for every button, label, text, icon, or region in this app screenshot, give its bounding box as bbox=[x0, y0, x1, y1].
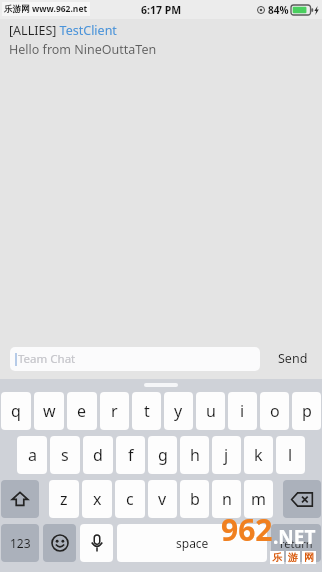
button[interactable]: w bbox=[34, 392, 64, 430]
staticText: x bbox=[93, 488, 102, 510]
staticText: c bbox=[126, 488, 134, 510]
staticText: 123 bbox=[10, 535, 31, 551]
button[interactable]: r bbox=[100, 392, 129, 430]
staticText: f bbox=[128, 444, 134, 466]
staticText: 乐 bbox=[272, 551, 282, 564]
staticText: m bbox=[251, 488, 266, 510]
staticText: o bbox=[270, 400, 280, 422]
staticText: Send bbox=[278, 350, 308, 367]
staticText: 962 bbox=[221, 509, 273, 550]
staticText: 游 bbox=[288, 551, 298, 564]
button[interactable]: k bbox=[244, 436, 273, 474]
staticText: z bbox=[60, 488, 68, 510]
staticText: Hello from NineOuttaTen bbox=[9, 41, 157, 58]
button[interactable]: g bbox=[148, 436, 177, 474]
button[interactable]: n bbox=[212, 480, 241, 518]
staticText: Team Chat bbox=[18, 351, 76, 367]
button[interactable]: a bbox=[17, 436, 47, 474]
button[interactable]: l bbox=[276, 436, 305, 474]
staticText: s bbox=[61, 444, 69, 466]
button[interactable]: u bbox=[196, 392, 225, 430]
staticText: 84% bbox=[268, 3, 289, 17]
staticText: e bbox=[77, 400, 87, 422]
button[interactable]: m bbox=[244, 480, 273, 518]
button[interactable]: e bbox=[67, 392, 97, 430]
staticText: .NET bbox=[273, 524, 316, 550]
button[interactable]: p bbox=[292, 392, 321, 430]
button[interactable]: v bbox=[148, 480, 177, 518]
staticText: space bbox=[176, 535, 209, 551]
staticText: n bbox=[222, 488, 232, 510]
staticText: d bbox=[93, 444, 103, 466]
staticText: j bbox=[224, 444, 229, 466]
button[interactable]: d bbox=[83, 436, 113, 474]
button[interactable]: o bbox=[260, 392, 289, 430]
staticText: www.962.net bbox=[32, 3, 88, 15]
staticText: u bbox=[206, 400, 216, 422]
button[interactable]: z bbox=[49, 480, 79, 518]
button[interactable]: t bbox=[132, 392, 161, 430]
staticText: [ALLIES] TestClient bbox=[9, 22, 117, 39]
button[interactable]: j bbox=[212, 436, 241, 474]
button[interactable]: x bbox=[82, 480, 112, 518]
button[interactable]: 123 bbox=[1, 524, 39, 562]
button[interactable]: i bbox=[228, 392, 257, 430]
button[interactable]: space bbox=[117, 524, 267, 562]
staticText: 网 bbox=[304, 551, 314, 564]
staticText: w bbox=[43, 400, 56, 422]
button[interactable]: q bbox=[1, 392, 31, 430]
staticText: 6:17 PM bbox=[141, 3, 182, 17]
button[interactable]: Emoji bbox=[43, 524, 76, 562]
button[interactable]: Backspace bbox=[283, 480, 321, 518]
button[interactable]: Send bbox=[274, 345, 312, 372]
staticText: i bbox=[240, 400, 245, 422]
staticText: 乐游网 bbox=[4, 4, 30, 15]
staticText: v bbox=[158, 488, 167, 510]
button[interactable]: Shift bbox=[1, 480, 39, 518]
button[interactable]: return bbox=[271, 524, 321, 562]
staticText: h bbox=[190, 444, 200, 466]
staticText: p bbox=[302, 400, 312, 422]
staticText: b bbox=[190, 488, 200, 510]
button[interactable]: Team Chat bbox=[10, 347, 260, 371]
staticText: y bbox=[174, 400, 183, 422]
staticText: q bbox=[11, 400, 21, 422]
button[interactable]: f bbox=[116, 436, 145, 474]
staticText: k bbox=[254, 444, 263, 466]
staticText: t bbox=[144, 400, 150, 422]
staticText: l bbox=[288, 444, 293, 466]
staticText: return bbox=[280, 536, 313, 551]
button[interactable]: h bbox=[180, 436, 209, 474]
staticText: r bbox=[111, 400, 118, 422]
staticText: a bbox=[28, 444, 37, 466]
staticText: g bbox=[158, 444, 168, 466]
button[interactable]: y bbox=[164, 392, 193, 430]
button[interactable]: Dictation bbox=[80, 524, 113, 562]
button[interactable]: c bbox=[115, 480, 145, 518]
button[interactable]: s bbox=[50, 436, 80, 474]
button[interactable]: b bbox=[180, 480, 209, 518]
